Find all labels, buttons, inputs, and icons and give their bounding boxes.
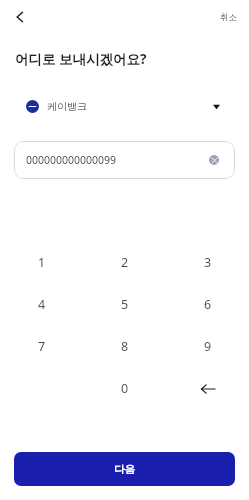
button[interactable]: 8 — [83, 338, 166, 355]
button[interactable]: 0 — [83, 380, 166, 397]
staticText: 어디로 보내시겠어요? — [15, 50, 147, 68]
staticText: 4 — [38, 296, 46, 313]
button[interactable]: 케이뱅크 — [14, 86, 235, 126]
staticText: 5 — [121, 296, 129, 313]
staticText: 7 — [38, 338, 46, 355]
button[interactable]: 4 — [0, 296, 83, 313]
button[interactable]: Back — [6, 3, 34, 31]
staticText: 9 — [204, 338, 212, 355]
button[interactable]: 1 — [0, 254, 83, 271]
staticText: 3 — [204, 254, 212, 271]
button[interactable]: Clear — [205, 151, 223, 169]
button[interactable]: 3 — [166, 254, 249, 271]
staticText: 8 — [121, 338, 129, 355]
staticText: 케이뱅크 — [47, 100, 87, 113]
button[interactable]: 5 — [83, 296, 166, 313]
button[interactable]: 취소 — [208, 6, 249, 29]
button[interactable]: 000000000000099 — [14, 141, 235, 179]
staticText: 000000000000099 — [26, 153, 117, 167]
other: Select bank — [209, 99, 223, 113]
staticText: 다음 — [114, 463, 135, 476]
button[interactable]: 다음 — [14, 452, 235, 486]
button[interactable]: 2 — [83, 254, 166, 271]
staticText: 취소 — [220, 12, 237, 23]
button[interactable]: 6 — [166, 296, 249, 313]
staticText: 0 — [121, 380, 129, 397]
button[interactable]: Backspace — [166, 381, 249, 397]
staticText: 6 — [204, 296, 212, 313]
staticText: 2 — [121, 254, 129, 271]
button[interactable]: 9 — [166, 338, 249, 355]
button[interactable]: 7 — [0, 338, 83, 355]
staticText: 1 — [38, 254, 46, 271]
